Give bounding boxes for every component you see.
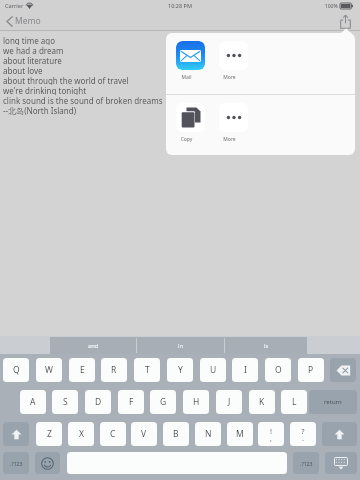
button[interactable]: N: [195, 422, 221, 446]
button[interactable]: Memo: [2, 12, 44, 30]
button[interactable]: B: [163, 422, 189, 446]
staticText: Q: [13, 364, 20, 376]
button[interactable]: F: [118, 390, 144, 414]
button[interactable]: is: [225, 337, 307, 354]
staticText: .?123: [300, 460, 313, 467]
staticText: D: [95, 396, 102, 408]
button[interactable]: Z: [36, 422, 62, 446]
staticText: K: [259, 396, 265, 408]
staticText: J: [228, 396, 231, 408]
staticText: More: [215, 74, 244, 81]
button[interactable]: and: [50, 337, 137, 354]
staticText: and: [88, 342, 99, 350]
button[interactable]: C: [100, 422, 126, 446]
button[interactable]: Hide keyboard: [325, 452, 357, 474]
staticText: ?: [296, 426, 310, 436]
button[interactable]: return: [309, 390, 357, 414]
button[interactable]: ?: [290, 422, 316, 446]
button[interactable]: K: [249, 390, 275, 414]
staticText: Z: [47, 428, 52, 440]
staticText: long time ago: [3, 35, 56, 45]
button[interactable]: !: [258, 422, 284, 446]
staticText: is: [264, 342, 269, 350]
staticText: T: [145, 364, 150, 376]
button[interactable]: .?123: [3, 452, 29, 474]
button[interactable]: More: [219, 103, 248, 147]
staticText: we had a dream: [3, 45, 64, 55]
button[interactable]: Mail: [176, 41, 205, 85]
staticText: G: [160, 396, 167, 408]
staticText: Y: [178, 364, 183, 376]
staticText: O: [275, 364, 282, 376]
staticText: U: [210, 364, 217, 376]
button[interactable]: H: [183, 390, 209, 414]
button[interactable]: A: [20, 390, 46, 414]
staticText: !: [264, 426, 278, 436]
staticText: M: [236, 428, 244, 440]
button[interactable]: Backspace: [330, 358, 356, 382]
staticText: about through the world of travel: [3, 75, 129, 85]
staticText: F: [129, 396, 134, 408]
staticText: about love: [3, 65, 43, 75]
button[interactable]: I: [232, 358, 258, 382]
staticText: A: [30, 396, 36, 408]
staticText: --北岛(North Island): [3, 105, 77, 115]
staticText: Copy: [172, 136, 201, 143]
button[interactable]: Shift: [322, 422, 357, 446]
staticText: E: [80, 364, 85, 376]
staticText: S: [63, 396, 68, 408]
button[interactable]: More: [219, 41, 248, 85]
staticText: 10:28 PM: [0, 2, 360, 9]
button[interactable]: Y: [167, 358, 193, 382]
staticText: 100%: [0, 2, 338, 9]
button[interactable]: R: [101, 358, 127, 382]
button[interactable]: .?123: [293, 452, 319, 474]
staticText: V: [141, 428, 147, 440]
staticText: C: [110, 428, 116, 440]
staticText: N: [205, 428, 212, 440]
staticText: H: [193, 396, 200, 408]
button[interactable]: X: [68, 422, 94, 446]
button[interactable]: Shift: [3, 422, 29, 446]
staticText: X: [79, 428, 84, 440]
staticText: B: [173, 428, 179, 440]
button[interactable]: Share: [336, 12, 356, 32]
staticText: return: [324, 398, 342, 406]
button[interactable]: E: [69, 358, 95, 382]
staticText: W: [45, 364, 53, 376]
button[interactable]: M: [227, 422, 253, 446]
button[interactable]: in: [137, 337, 225, 354]
button[interactable]: P: [298, 358, 324, 382]
staticText: R: [111, 364, 117, 376]
staticText: More: [215, 136, 244, 143]
staticText: in: [178, 342, 184, 350]
staticText: L: [292, 396, 297, 408]
staticText: ,: [264, 434, 278, 444]
button[interactable]: T: [134, 358, 160, 382]
staticText: we're drinking tonight: [3, 85, 87, 95]
staticText: .: [296, 434, 310, 444]
staticText: .?123: [10, 460, 23, 467]
button[interactable]: D: [85, 390, 111, 414]
staticText: Carrier: [5, 2, 24, 9]
staticText: clink sound is the sound of broken dream…: [3, 95, 163, 105]
staticText: P: [308, 364, 314, 376]
button[interactable]: L: [281, 390, 307, 414]
staticText: I: [244, 364, 247, 376]
staticText: Mail: [172, 74, 201, 81]
button[interactable]: Copy: [176, 103, 205, 147]
button[interactable]: W: [36, 358, 62, 382]
button[interactable]: U: [200, 358, 226, 382]
button[interactable]: Q: [3, 358, 29, 382]
button[interactable]: G: [150, 390, 176, 414]
staticText: Memo: [15, 15, 41, 27]
button[interactable]: O: [265, 358, 291, 382]
button[interactable]: J: [216, 390, 242, 414]
button[interactable]: Emoji: [35, 452, 60, 474]
button[interactable]: S: [52, 390, 78, 414]
button[interactable]: V: [131, 422, 157, 446]
staticText: about literature: [3, 55, 62, 65]
